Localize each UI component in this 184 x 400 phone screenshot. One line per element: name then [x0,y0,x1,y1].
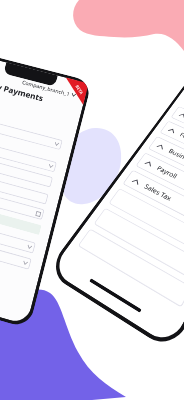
button[interactable]: For My Accountant [165,123,184,172]
other: Home indicator [89,278,142,313]
button[interactable]: Expenses [176,108,184,154]
staticText: Salary Payments [0,76,45,104]
button[interactable]: Business Overview [153,138,184,190]
button[interactable] [0,215,36,254]
staticText: Payroll [155,164,179,181]
button[interactable] [93,207,184,282]
staticText: Sales Tax [142,182,173,204]
button[interactable] [0,151,53,188]
staticText: BETA [73,83,87,96]
staticText: For My Accountant [178,131,184,161]
button[interactable] [0,168,49,205]
button[interactable]: Sales Tax [128,172,184,231]
button[interactable] [108,188,184,257]
staticText: Company_branch_1 [22,79,71,97]
button[interactable] [0,198,42,235]
button[interactable]: Payroll [141,155,184,210]
button[interactable] [0,115,63,150]
button[interactable] [0,231,32,270]
staticText: Business Overview [167,147,184,179]
button[interactable] [0,137,57,172]
button[interactable] [77,228,184,308]
button[interactable] [0,183,45,220]
